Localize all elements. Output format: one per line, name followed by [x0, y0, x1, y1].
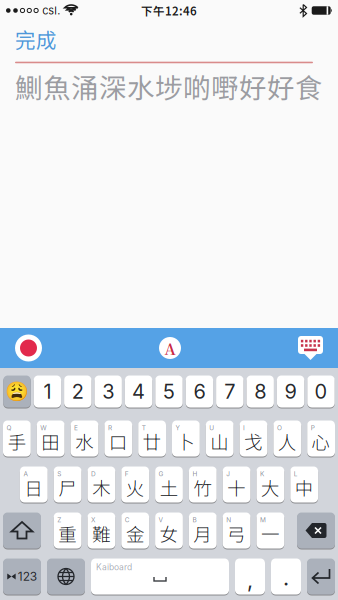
button[interactable]: 十: [223, 466, 250, 503]
button[interactable]: 6: [186, 375, 213, 408]
button[interactable]: 口: [104, 420, 132, 457]
button[interactable]: 尸: [54, 466, 81, 503]
button[interactable]: 9: [277, 375, 304, 408]
staticText: 6: [193, 379, 205, 404]
button[interactable]: Return: [307, 558, 335, 595]
button[interactable]: 8: [246, 375, 274, 408]
staticText: 😩: [5, 380, 29, 403]
staticText: 木: [92, 474, 111, 501]
button[interactable]: 1: [34, 375, 61, 408]
button[interactable]: 0: [307, 375, 335, 408]
button[interactable]: 5: [155, 375, 183, 408]
staticText: ,: [247, 566, 253, 593]
button[interactable]: 手: [3, 420, 31, 457]
staticText: B: [192, 516, 196, 524]
staticText: 大: [261, 474, 280, 501]
button[interactable]: 4: [125, 375, 152, 408]
button[interactable]: 卜: [172, 420, 200, 457]
staticText: 中: [295, 474, 314, 501]
staticText: 人: [278, 428, 297, 455]
button[interactable]: 大: [256, 466, 284, 503]
staticText: 月: [193, 520, 212, 547]
button[interactable]: 😩: [3, 375, 31, 408]
staticText: 123: [18, 569, 37, 584]
staticText: .: [283, 564, 289, 591]
staticText: T: [142, 424, 146, 432]
staticText: 戈: [244, 428, 263, 455]
button[interactable]: 火: [121, 466, 149, 503]
staticText: J: [226, 470, 230, 478]
button[interactable]: Letter A: [159, 337, 181, 359]
button[interactable]: 完成: [15, 24, 57, 54]
staticText: 土: [159, 474, 178, 501]
button[interactable]: 廿: [138, 420, 166, 457]
button[interactable]: Numbers: [3, 558, 41, 595]
button[interactable]: 水: [71, 420, 98, 457]
button[interactable]: 日: [20, 466, 48, 503]
staticText: S: [57, 470, 61, 478]
button[interactable]: 田: [37, 420, 65, 457]
button[interactable]: 女: [155, 512, 183, 549]
button[interactable]: 一: [256, 512, 284, 549]
staticText: 日: [24, 474, 43, 501]
button[interactable]: Space: [91, 558, 229, 595]
button[interactable]: 2: [64, 375, 91, 408]
staticText: 2: [72, 379, 84, 404]
staticText: F: [125, 470, 129, 478]
button[interactable]: .: [271, 558, 301, 595]
button[interactable]: 土: [155, 466, 183, 503]
staticText: N: [226, 516, 231, 524]
button[interactable]: Shift: [3, 512, 41, 549]
staticText: 手: [7, 428, 26, 455]
button[interactable]: Next keyboard: [47, 558, 85, 595]
button[interactable]: 難: [87, 512, 115, 549]
staticText: W: [40, 424, 46, 432]
staticText: 0: [314, 379, 327, 404]
button[interactable]: Dismiss keyboard: [298, 336, 323, 360]
staticText: P: [311, 424, 315, 432]
staticText: 金: [126, 520, 145, 547]
staticText: Q: [6, 424, 11, 432]
staticText: 尸: [58, 474, 77, 501]
staticText: 火: [126, 474, 145, 501]
staticText: 重: [58, 520, 77, 547]
staticText: C: [125, 516, 130, 524]
staticText: G: [159, 470, 164, 478]
button[interactable]: 戈: [240, 420, 267, 457]
button[interactable]: 3: [94, 375, 122, 408]
button[interactable]: 7: [216, 375, 243, 408]
staticText: D: [91, 470, 96, 478]
staticText: H: [192, 470, 197, 478]
button[interactable]: 弓: [223, 512, 250, 549]
button[interactable]: 月: [189, 512, 217, 549]
staticText: 下午12:46: [141, 2, 197, 19]
staticText: L: [294, 470, 298, 478]
button[interactable]: Record: [15, 334, 42, 361]
button[interactable]: 竹: [189, 466, 217, 503]
staticText: 一: [261, 520, 280, 547]
staticText: 9: [285, 379, 297, 404]
staticText: V: [159, 516, 163, 524]
button[interactable]: 山: [206, 420, 234, 457]
staticText: 田: [41, 428, 60, 455]
staticText: 7: [224, 379, 235, 404]
staticText: 弓: [227, 520, 246, 547]
staticText: 女: [159, 520, 178, 547]
button[interactable]: 金: [121, 512, 149, 549]
staticText: U: [209, 424, 214, 432]
button[interactable]: ,: [235, 558, 265, 595]
button[interactable]: Delete: [297, 512, 335, 549]
staticText: 心: [312, 428, 331, 455]
staticText: Y: [175, 424, 179, 432]
staticText: 鰂魚涌深水埗啲嘢好好食: [15, 66, 323, 106]
staticText: 完成: [15, 24, 57, 54]
button[interactable]: 心: [307, 420, 335, 457]
button[interactable]: 人: [273, 420, 301, 457]
staticText: Z: [57, 516, 61, 524]
button[interactable]: 重: [54, 512, 81, 549]
button[interactable]: 中: [290, 466, 318, 503]
staticText: Kaiboard: [96, 562, 132, 572]
staticText: 5: [163, 379, 175, 404]
staticText: 難: [92, 520, 111, 547]
button[interactable]: 木: [87, 466, 115, 503]
